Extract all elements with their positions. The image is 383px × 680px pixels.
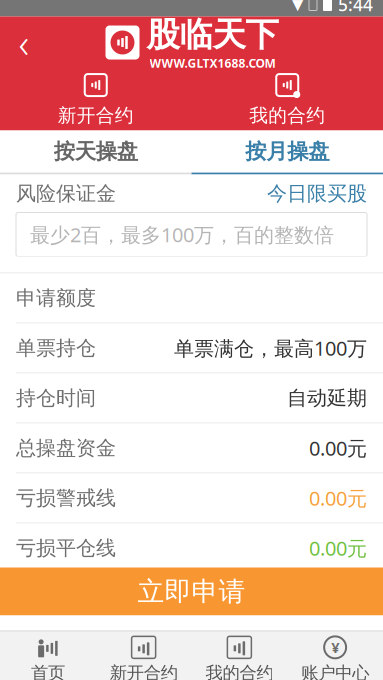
button[interactable]: 我的合约: [191, 631, 287, 680]
staticText: 新开合约: [58, 104, 134, 127]
button[interactable]: 按月操盘: [191, 130, 383, 174]
staticText: 0.00元: [309, 435, 367, 461]
staticText: 按月操盘: [245, 138, 329, 165]
staticText: 首页: [31, 662, 65, 680]
button[interactable]: ¥: [287, 631, 383, 680]
staticText: 0.00元: [309, 535, 367, 561]
button[interactable]: 立即申请: [0, 567, 383, 615]
staticText: 账户中心: [301, 662, 369, 680]
staticText: 自动延期: [287, 386, 367, 410]
staticText: 持仓时间: [16, 386, 96, 410]
staticText: 亏损警戒线: [16, 486, 116, 510]
button[interactable]: 新开合约: [96, 631, 192, 680]
staticText: 新开合约: [110, 662, 178, 680]
staticText: 亏损平仓线: [16, 536, 116, 560]
staticText: ¥: [331, 638, 339, 657]
button[interactable]: 首页: [0, 631, 96, 680]
button[interactable]: 我的合约: [191, 68, 383, 130]
staticText: ▼: [292, 0, 303, 13]
staticText: 股临天下: [146, 14, 278, 55]
staticText: 我的合约: [205, 662, 273, 680]
staticText: 立即申请: [137, 575, 245, 608]
staticText: 风险保证金: [16, 181, 116, 206]
button[interactable]: Back: [0, 18, 48, 66]
staticText: WWW.GLTX1688.COM: [149, 55, 275, 71]
staticText: 申请额度: [16, 286, 96, 310]
staticText: 最少2百，最多100万，百的整数倍: [30, 221, 334, 248]
button[interactable]: 按天操盘: [0, 130, 191, 174]
staticText: ‹: [18, 16, 29, 69]
staticText: 0.00元: [309, 485, 367, 511]
staticText: 今日限买股: [267, 181, 367, 206]
button[interactable]: 新开合约: [0, 68, 191, 130]
staticText: 总操盘资金: [16, 436, 116, 460]
staticText: 单票持仓: [16, 336, 96, 360]
staticText: 按天操盘: [54, 138, 138, 165]
button[interactable]: 今日限买股: [267, 181, 367, 206]
staticText: 我的合约: [249, 104, 325, 127]
staticText: 5:44: [338, 0, 373, 16]
staticText: 单票满仓，最高100万: [174, 335, 367, 361]
